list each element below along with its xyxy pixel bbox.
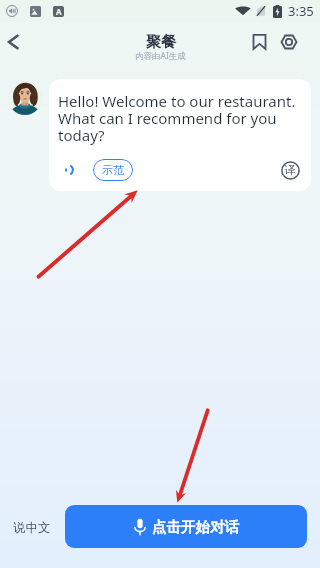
button[interactable]: Translate [279,159,301,181]
staticText: 聚餐 [146,33,176,52]
staticText: A [56,6,62,17]
button[interactable]: Settings [274,27,304,57]
button[interactable]: Back [0,26,29,58]
staticText: 示范 [102,163,124,177]
staticText: 说中文 [13,520,51,536]
staticText: 译 [284,163,296,177]
button[interactable]: 示范 [93,159,133,181]
staticText: 内容由AI生成 [135,50,186,62]
button[interactable]: 点击开始对话 [65,505,307,548]
button[interactable]: Bookmark [244,27,274,57]
staticText: 3:35 [288,2,314,20]
button[interactable]: 说中文 [9,517,55,539]
staticText: 点击开始对话 [152,518,239,536]
staticText: Hello! Welcome to our restaurant. What c… [58,91,301,146]
button[interactable]: Play audio [58,159,80,181]
